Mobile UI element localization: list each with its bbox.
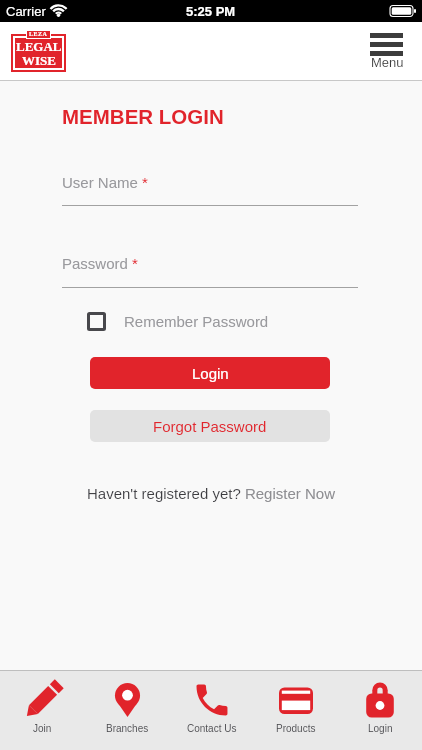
staticText: Join xyxy=(33,723,52,734)
staticText: Contact Us xyxy=(187,723,237,734)
staticText: Login xyxy=(368,723,393,734)
staticText: LEZA xyxy=(29,31,48,38)
staticText: LEGAL xyxy=(16,39,62,53)
staticText: 5:25 PM xyxy=(186,4,236,19)
button[interactable]: LEGAL xyxy=(11,28,66,72)
staticText: Menu xyxy=(371,55,404,70)
staticText: Forgot Password xyxy=(153,418,267,435)
button[interactable]: Login xyxy=(338,671,422,750)
button[interactable]: Login xyxy=(90,357,330,389)
button[interactable]: Forgot Password xyxy=(90,410,330,442)
button[interactable]: Join xyxy=(0,671,85,750)
button[interactable]: Branches xyxy=(85,671,170,750)
button[interactable]: Haven't registered yet? Register Now xyxy=(87,485,335,502)
staticText: Password * xyxy=(62,255,138,272)
button[interactable]: Products xyxy=(254,671,338,750)
staticText: MEMBER LOGIN xyxy=(62,105,224,128)
staticText: Carrier xyxy=(6,4,46,19)
button[interactable]: Menu xyxy=(362,30,410,76)
staticText: Remember Password xyxy=(124,313,269,330)
button[interactable]: Remember Password xyxy=(87,312,269,331)
staticText: WISE xyxy=(22,53,56,67)
staticText: Login xyxy=(192,365,229,382)
staticText: Branches xyxy=(106,723,149,734)
staticText: Products xyxy=(276,723,316,734)
button[interactable]: Contact Us xyxy=(170,671,254,750)
staticText: User Name * xyxy=(62,174,148,191)
